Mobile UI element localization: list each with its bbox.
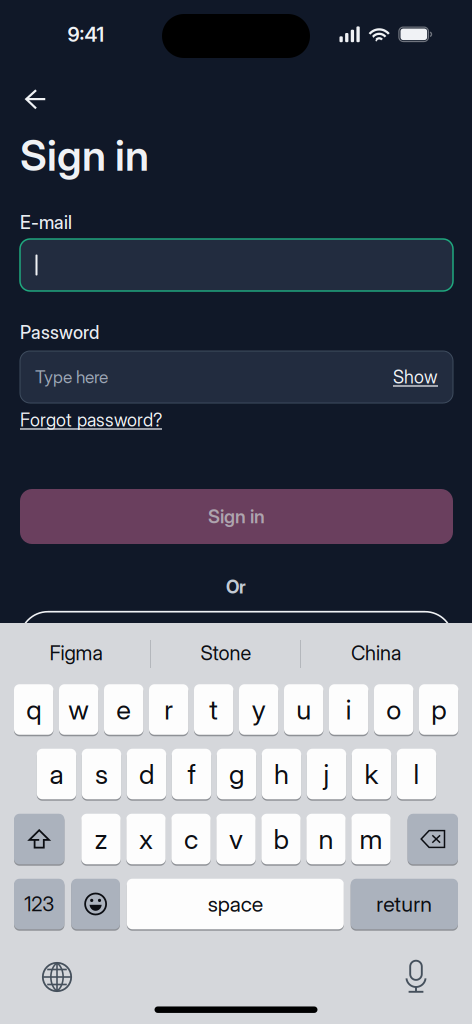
staticText: a bbox=[49, 757, 63, 791]
button[interactable]: Dictate bbox=[394, 957, 438, 997]
button[interactable]: Forgot password? bbox=[20, 407, 220, 433]
staticText: k bbox=[364, 757, 378, 791]
button[interactable]: z bbox=[81, 813, 121, 865]
staticText: Password bbox=[20, 322, 99, 343]
button[interactable]: Sign in bbox=[20, 489, 453, 544]
button[interactable]: k bbox=[352, 748, 391, 800]
button[interactable]: o bbox=[374, 683, 413, 735]
staticText: x bbox=[139, 822, 153, 856]
staticText: l bbox=[413, 757, 419, 791]
staticText: Forgot password? bbox=[20, 409, 162, 431]
button[interactable]: h bbox=[262, 748, 301, 800]
button[interactable]: Back bbox=[13, 77, 59, 121]
button[interactable]: i bbox=[329, 683, 368, 735]
staticText: m bbox=[359, 822, 382, 856]
button[interactable]: t bbox=[194, 683, 233, 735]
button[interactable]: x bbox=[126, 813, 166, 865]
button[interactable]: 123 bbox=[14, 878, 64, 930]
staticText: s bbox=[95, 757, 108, 791]
staticText: t bbox=[209, 693, 218, 726]
button[interactable]: c bbox=[171, 813, 211, 865]
button[interactable]: d bbox=[127, 748, 166, 800]
button[interactable]: n bbox=[306, 813, 346, 865]
button[interactable]: p bbox=[419, 683, 458, 735]
staticText: China bbox=[351, 641, 401, 665]
button[interactable]: a bbox=[37, 748, 76, 800]
button[interactable]: Figma bbox=[1, 623, 151, 683]
button[interactable]: China bbox=[301, 623, 451, 683]
staticText: f bbox=[187, 757, 195, 791]
staticText: Sign in bbox=[20, 130, 149, 181]
button[interactable]: l bbox=[397, 748, 436, 800]
button[interactable]: Shift bbox=[14, 813, 64, 865]
staticText: Stone bbox=[200, 641, 251, 665]
staticText: d bbox=[139, 757, 154, 791]
button[interactable]: y bbox=[239, 683, 278, 735]
button[interactable]: u bbox=[284, 683, 323, 735]
staticText: Type here bbox=[35, 366, 108, 387]
button[interactable] bbox=[20, 612, 453, 668]
button[interactable]: g bbox=[217, 748, 256, 800]
staticText: return bbox=[376, 891, 432, 917]
staticText: e bbox=[116, 693, 131, 726]
button[interactable]: s bbox=[82, 748, 121, 800]
staticText: Figma bbox=[49, 641, 102, 665]
button[interactable]: w bbox=[59, 683, 98, 735]
button[interactable]: Delete bbox=[408, 813, 458, 865]
staticText: 9:41 bbox=[67, 22, 104, 47]
staticText: i bbox=[346, 693, 352, 726]
staticText: n bbox=[318, 822, 333, 856]
staticText: Or bbox=[226, 576, 246, 598]
button[interactable]: Show bbox=[378, 360, 438, 394]
staticText: j bbox=[323, 757, 329, 791]
staticText: o bbox=[386, 693, 401, 726]
staticText: y bbox=[252, 693, 266, 726]
staticText: p bbox=[431, 693, 446, 726]
staticText: 123 bbox=[24, 892, 54, 916]
button[interactable]: v bbox=[216, 813, 256, 865]
button[interactable]: q bbox=[14, 683, 53, 735]
staticText: h bbox=[274, 757, 289, 791]
button[interactable]: space bbox=[127, 878, 344, 930]
staticText: w bbox=[68, 693, 89, 726]
staticText: g bbox=[229, 757, 244, 791]
staticText: space bbox=[208, 891, 263, 917]
staticText: c bbox=[184, 822, 198, 856]
staticText: q bbox=[26, 693, 41, 726]
button[interactable]: Next keyboard bbox=[35, 957, 79, 997]
staticText: u bbox=[296, 693, 311, 726]
button[interactable]: Emoji bbox=[71, 878, 120, 930]
staticText: b bbox=[273, 822, 288, 856]
button[interactable]: Stone bbox=[151, 623, 301, 683]
staticText: E-mail bbox=[20, 212, 72, 233]
staticText: Show bbox=[393, 366, 438, 388]
button[interactable]: m bbox=[351, 813, 391, 865]
staticText: v bbox=[229, 822, 243, 856]
staticText: z bbox=[94, 822, 107, 856]
button[interactable]: e bbox=[104, 683, 143, 735]
staticText: r bbox=[164, 693, 173, 726]
button[interactable]: j bbox=[307, 748, 346, 800]
staticText: Sign in bbox=[208, 505, 265, 528]
button[interactable]: return bbox=[351, 878, 458, 930]
button[interactable]: f bbox=[172, 748, 211, 800]
button[interactable]: r bbox=[149, 683, 188, 735]
button[interactable]: b bbox=[261, 813, 301, 865]
